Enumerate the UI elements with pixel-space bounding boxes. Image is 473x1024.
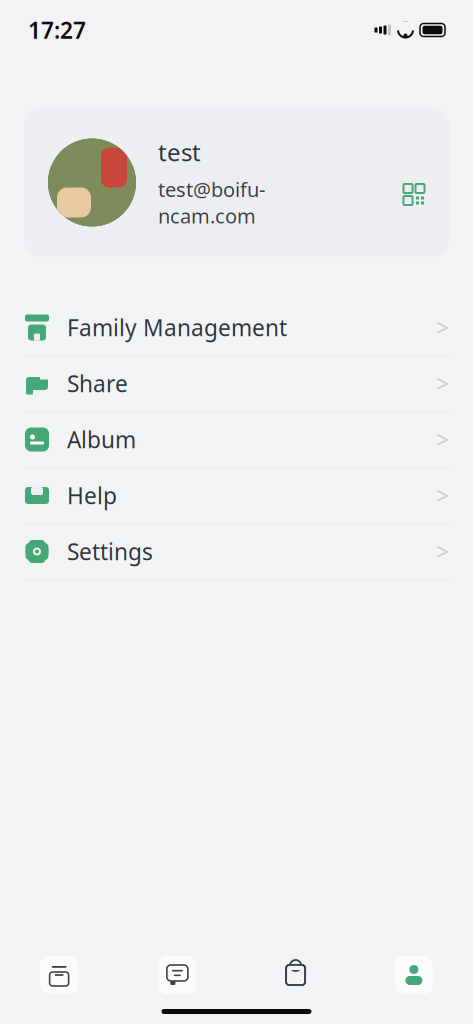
staticText: Help bbox=[67, 480, 117, 510]
staticText: Settings bbox=[67, 536, 153, 566]
button[interactable]: Help bbox=[0, 468, 473, 524]
button[interactable]: Family Management bbox=[0, 300, 473, 356]
button[interactable]: Settings bbox=[0, 524, 473, 580]
staticText: Share bbox=[67, 368, 128, 398]
button[interactable]: Home bbox=[0, 956, 118, 994]
button[interactable]: Profile bbox=[355, 956, 473, 994]
staticText: Album bbox=[67, 424, 136, 454]
staticText: > bbox=[436, 312, 449, 342]
staticText: 17:27 bbox=[28, 15, 86, 45]
button[interactable]: Album bbox=[0, 412, 473, 468]
staticText: test@boifuncam.com bbox=[158, 176, 265, 229]
staticText: > bbox=[436, 536, 449, 566]
button[interactable]: Store bbox=[236, 956, 355, 994]
staticText: > bbox=[436, 480, 449, 510]
staticText: > bbox=[436, 368, 449, 398]
staticText: test bbox=[158, 136, 201, 168]
button[interactable]: Messages bbox=[118, 956, 236, 994]
button[interactable]: test bbox=[0, 108, 473, 257]
staticText: > bbox=[436, 424, 449, 454]
staticText: Family Management bbox=[67, 312, 287, 342]
button[interactable]: Share bbox=[0, 356, 473, 412]
